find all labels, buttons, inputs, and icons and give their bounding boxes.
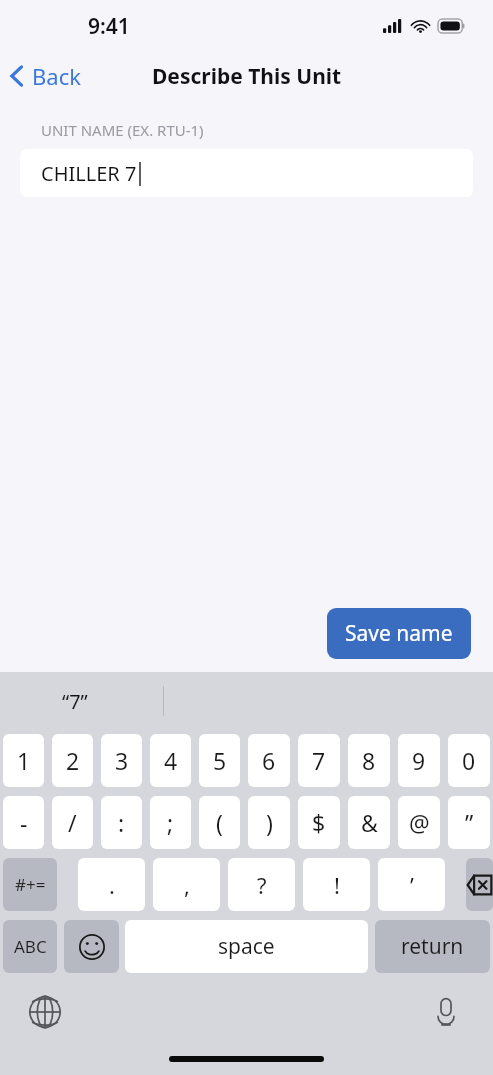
button[interactable]: / bbox=[52, 796, 93, 849]
button[interactable]: 3 bbox=[101, 734, 142, 787]
button[interactable]: ABC bbox=[3, 920, 57, 973]
button[interactable]: Back bbox=[0, 55, 93, 97]
staticText: - bbox=[20, 807, 28, 838]
button[interactable]: 8 bbox=[348, 734, 390, 787]
staticText: 5 bbox=[213, 745, 227, 776]
button[interactable]: space bbox=[125, 920, 368, 973]
staticText: ( bbox=[216, 807, 223, 838]
button[interactable]: Backspace bbox=[466, 858, 493, 911]
staticText: 9 bbox=[412, 745, 426, 776]
staticText: 4 bbox=[164, 745, 178, 776]
button[interactable]: ; bbox=[150, 796, 191, 849]
button[interactable]: & bbox=[348, 796, 390, 849]
button[interactable]: ! bbox=[303, 858, 370, 911]
staticText: / bbox=[68, 807, 77, 838]
staticText: 6 bbox=[262, 745, 276, 776]
staticText: 0 bbox=[462, 745, 476, 776]
staticText: Save name bbox=[345, 619, 453, 648]
button[interactable]: ’ bbox=[378, 858, 445, 911]
button[interactable]: Save name bbox=[327, 608, 471, 659]
button[interactable]: 9 bbox=[398, 734, 440, 787]
button[interactable]: Emoji bbox=[64, 920, 119, 973]
staticText: 9:41 bbox=[88, 12, 130, 41]
button[interactable]: ? bbox=[228, 858, 295, 911]
staticText: ? bbox=[257, 870, 267, 900]
button[interactable]: Change keyboard bbox=[24, 991, 66, 1033]
button[interactable]: 1 bbox=[3, 734, 44, 787]
staticText: & bbox=[361, 807, 378, 838]
staticText: 3 bbox=[115, 745, 129, 776]
staticText: ” bbox=[465, 807, 474, 838]
button[interactable]: ( bbox=[199, 796, 240, 849]
staticText: @ bbox=[409, 807, 430, 838]
button[interactable]: Dictate bbox=[425, 991, 467, 1033]
button[interactable]: return bbox=[375, 920, 490, 973]
button[interactable]: ) bbox=[248, 796, 290, 849]
staticText: ) bbox=[266, 807, 273, 838]
button[interactable]: 2 bbox=[52, 734, 93, 787]
button[interactable]: ” bbox=[448, 796, 490, 849]
staticText: 8 bbox=[362, 745, 376, 776]
staticText: Back bbox=[32, 61, 81, 91]
button[interactable]: 5 bbox=[199, 734, 240, 787]
staticText: space bbox=[218, 932, 275, 961]
button[interactable]: #+= bbox=[3, 858, 57, 911]
staticText: $ bbox=[312, 807, 326, 838]
button[interactable]: . bbox=[78, 858, 145, 911]
staticText: ABC bbox=[14, 935, 47, 958]
button[interactable]: @ bbox=[398, 796, 440, 849]
staticText: 7 bbox=[312, 745, 326, 776]
button[interactable]: - bbox=[3, 796, 44, 849]
staticText: return bbox=[401, 932, 464, 961]
staticText: ’ bbox=[410, 870, 414, 900]
staticText: #+= bbox=[15, 873, 46, 896]
button[interactable]: 4 bbox=[150, 734, 191, 787]
button[interactable]: 7 bbox=[298, 734, 340, 787]
staticText: UNIT NAME (EX. RTU-1) bbox=[41, 120, 204, 140]
button[interactable]: $ bbox=[298, 796, 340, 849]
staticText: : bbox=[118, 807, 125, 838]
staticText: ! bbox=[334, 870, 340, 900]
staticText: . bbox=[109, 870, 115, 900]
staticText: ; bbox=[167, 807, 174, 838]
staticText: 2 bbox=[66, 745, 80, 776]
button[interactable]: CHILLER 7 bbox=[20, 149, 473, 197]
button[interactable]: , bbox=[153, 858, 220, 911]
staticText: Describe This Unit bbox=[152, 62, 342, 91]
staticText: , bbox=[184, 870, 190, 900]
button[interactable]: : bbox=[101, 796, 142, 849]
button[interactable]: 0 bbox=[448, 734, 490, 787]
button[interactable]: 6 bbox=[248, 734, 290, 787]
button[interactable]: “7” bbox=[62, 688, 88, 715]
staticText: 1 bbox=[17, 745, 31, 776]
staticText: CHILLER 7 bbox=[41, 160, 137, 187]
